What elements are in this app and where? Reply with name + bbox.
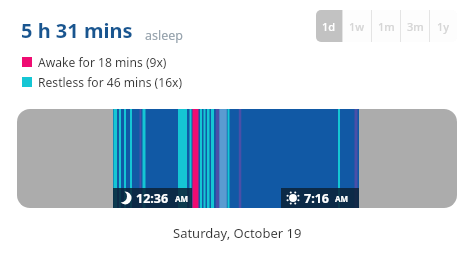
other: Wake time [286, 191, 300, 205]
button[interactable]: 3m [401, 10, 429, 42]
button[interactable]: 1d [316, 10, 342, 42]
button[interactable]: 1w [343, 10, 371, 42]
staticText: Saturday, October 19 [173, 224, 302, 242]
button[interactable]: Bed time [113, 188, 192, 208]
button[interactable]: 1m [372, 10, 400, 42]
staticText: 1y [437, 19, 450, 34]
staticText: Restless for 46 mins (16x) [38, 74, 183, 90]
staticText: 12:36 [136, 190, 169, 207]
staticText: asleep [145, 27, 184, 44]
staticText: AM [335, 193, 349, 204]
staticText: 1w [349, 19, 365, 34]
staticText: 1m [378, 19, 395, 34]
button[interactable]: Wake time [281, 188, 359, 208]
button[interactable]: Restless for 46 mins (16x) [22, 73, 183, 90]
button[interactable]: 1y [430, 10, 457, 42]
staticText: 1d [322, 19, 336, 34]
staticText: AM [175, 193, 189, 204]
other: Bed time [118, 191, 132, 205]
staticText: 5 h 31 mins [21, 17, 133, 44]
staticText: 7:16 [304, 190, 329, 207]
button[interactable]: Awake for 18 mins (9x) [22, 53, 167, 70]
staticText: Awake for 18 mins (9x) [38, 54, 167, 70]
staticText: 3m [407, 19, 424, 34]
